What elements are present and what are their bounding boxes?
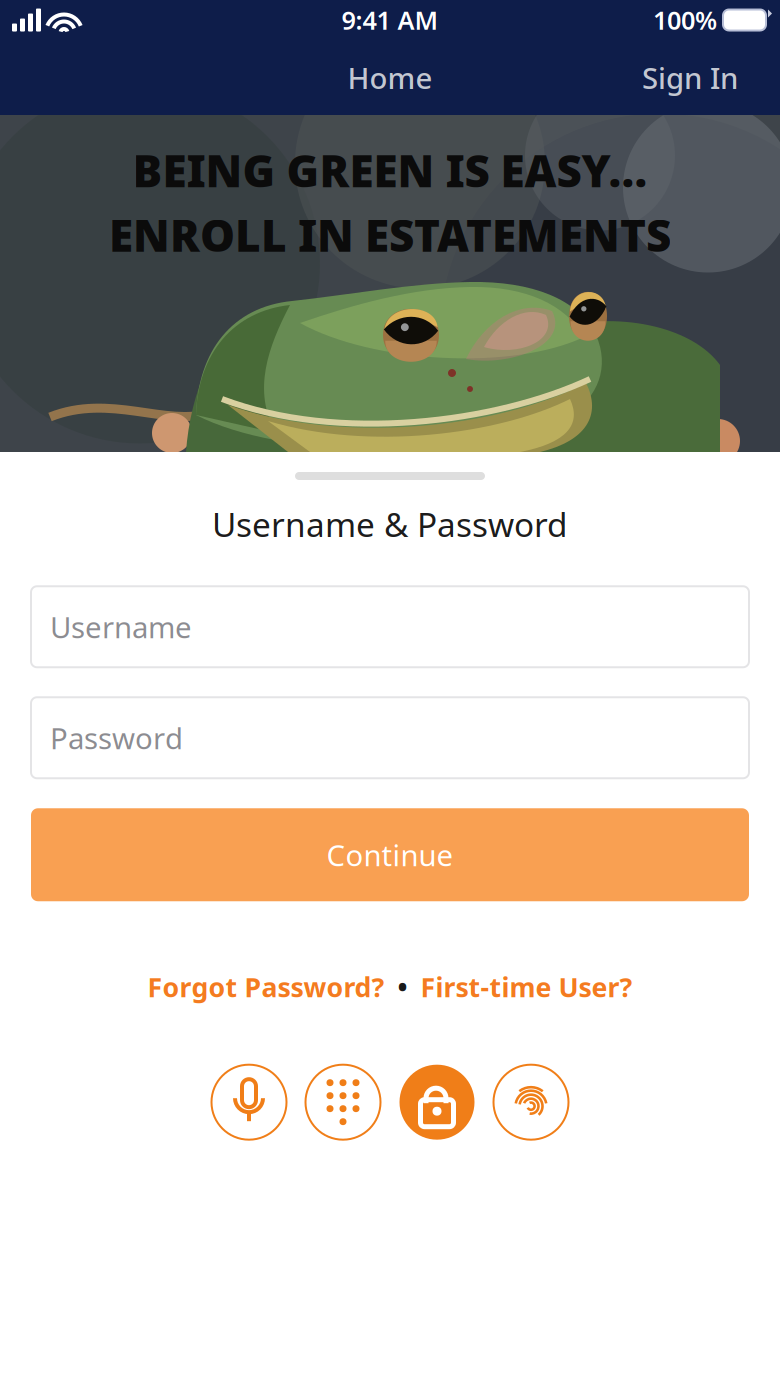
button[interactable]: Forgot Password? xyxy=(147,969,384,1005)
staticText: Username & Password xyxy=(212,502,568,546)
button[interactable]: Password sign in xyxy=(399,1065,474,1140)
staticText: Forgot Password? xyxy=(147,969,384,1005)
button[interactable]: PIN keypad sign in xyxy=(305,1065,380,1140)
staticText: First-time User? xyxy=(420,969,632,1005)
button[interactable]: Voice sign in xyxy=(211,1065,286,1140)
button[interactable]: Sign In xyxy=(630,50,750,105)
staticText: 9:41 AM xyxy=(341,3,438,37)
button[interactable]: Continue xyxy=(31,808,749,901)
staticText: Username xyxy=(50,607,192,646)
staticText: Sign In xyxy=(642,58,738,97)
staticText: ENROLL IN ESTATEMENTS xyxy=(109,205,671,264)
staticText: BEING GREEN IS EASY... xyxy=(132,141,647,199)
staticText: 100% xyxy=(653,3,717,37)
button[interactable]: Username xyxy=(31,586,749,667)
staticText: Home xyxy=(347,58,432,97)
staticText: Password xyxy=(50,718,183,757)
button[interactable]: Password xyxy=(31,697,749,778)
staticText: • xyxy=(397,969,407,1005)
button[interactable]: Fingerprint sign in xyxy=(493,1065,568,1140)
staticText: Continue xyxy=(326,835,453,874)
button[interactable]: First-time User? xyxy=(420,969,632,1005)
